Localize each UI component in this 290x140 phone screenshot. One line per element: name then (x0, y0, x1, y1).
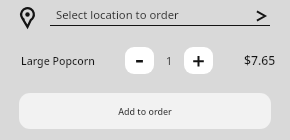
button[interactable]: Decrease quantity (125, 47, 154, 74)
staticText: Add to order (118, 105, 172, 117)
staticText: $7.65 (244, 52, 276, 69)
staticText: Select location to order (56, 7, 179, 22)
staticText: 1 (166, 53, 173, 68)
button[interactable]: Increase quantity (184, 47, 213, 74)
button[interactable]: Location (14, 4, 40, 30)
button[interactable]: Select location to order (50, 3, 271, 26)
button[interactable]: Large Popcorn (21, 54, 95, 68)
button[interactable]: Add to order (19, 93, 271, 129)
